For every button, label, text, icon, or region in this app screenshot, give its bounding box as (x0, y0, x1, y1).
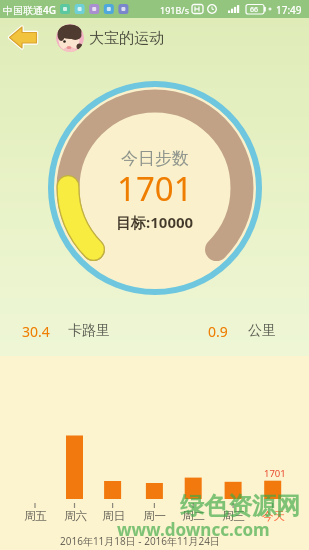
button[interactable]: 大宝的运动 (56, 24, 164, 52)
staticText: 30.4 (22, 322, 50, 341)
staticText: 周二 (182, 509, 205, 523)
staticText: 17:49 (276, 3, 302, 17)
staticText: 周日 (102, 509, 125, 523)
staticText: 公里 (248, 322, 276, 340)
staticText: www.downcc.com (117, 518, 270, 541)
staticText: 卡路里 (68, 322, 110, 340)
staticText: 绿色资源网 (180, 491, 300, 521)
staticText: 1701 (264, 467, 286, 480)
staticText: 0.9 (208, 322, 228, 341)
staticText: 周五 (24, 509, 47, 523)
staticText: 大宝的运动 (89, 29, 164, 48)
staticText: 目标:10000 (116, 212, 194, 232)
button[interactable] (6, 24, 40, 51)
staticText: 191B/s (160, 4, 189, 16)
staticText: 今天 (262, 509, 285, 523)
staticText: 66 (250, 5, 259, 15)
staticText: 周三 (222, 509, 245, 523)
staticText: 中国联通4G (3, 3, 56, 17)
staticText: 2016年11月18日 - 2016年11月24日 (60, 534, 220, 548)
staticText: 1701 (117, 166, 193, 211)
staticText: 周一 (143, 509, 166, 523)
staticText: 周六 (64, 509, 87, 523)
staticText: 今日步数 (121, 148, 189, 169)
